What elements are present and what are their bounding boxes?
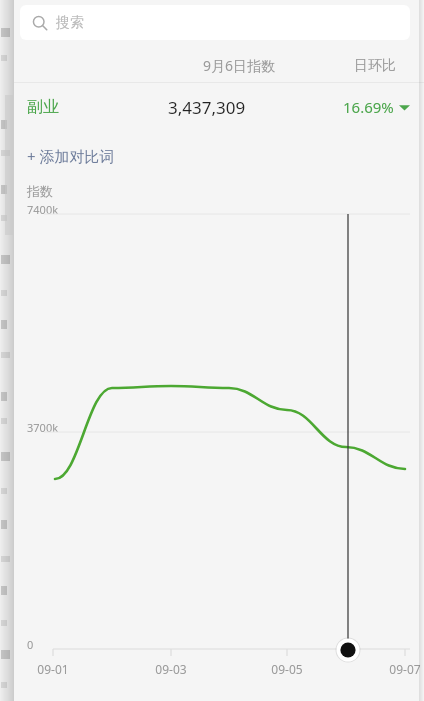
other: Search (32, 15, 48, 31)
staticText: 09-05 (265, 661, 309, 677)
button[interactable]: 副业 (14, 83, 424, 131)
button[interactable]: Search (20, 5, 410, 40)
button[interactable]: + 添加对比词 (14, 131, 424, 181)
staticText: + 添加对比词 (27, 146, 115, 166)
staticText: 指数 (27, 183, 53, 199)
staticText: 搜索 (56, 14, 84, 32)
staticText: 副业 (27, 97, 59, 117)
staticText: 0 (27, 637, 34, 652)
staticText: 7400k (27, 202, 59, 217)
staticText: 9月6日指数 (203, 56, 276, 75)
staticText: 09-03 (149, 661, 193, 677)
staticText: 3700k (27, 420, 59, 435)
staticText: 3,437,309 (168, 96, 246, 119)
staticText: 16.69% (343, 97, 394, 117)
staticText: 09-01 (31, 661, 75, 677)
staticText: 日环比 (354, 57, 396, 75)
staticText: 09-07 (383, 661, 424, 677)
